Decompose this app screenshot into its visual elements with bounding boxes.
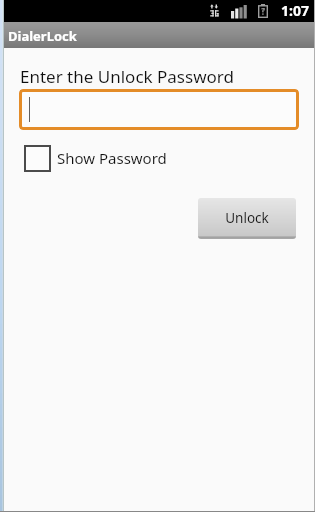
staticText: 1:07 xyxy=(281,1,309,20)
staticText: Show Password xyxy=(57,148,167,168)
staticText: Enter the Unlock Password xyxy=(20,65,234,88)
button[interactable]: Unlock xyxy=(198,198,296,239)
button[interactable]: Show Password xyxy=(24,141,179,176)
staticText: DialerLock xyxy=(8,27,77,45)
staticText: Unlock xyxy=(225,209,269,227)
button[interactable] xyxy=(19,89,299,130)
